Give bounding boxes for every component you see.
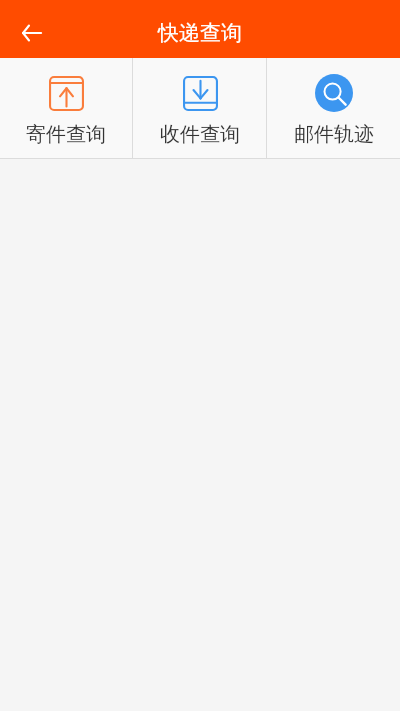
staticText: 快递查询 (158, 20, 242, 46)
button[interactable]: 寄件查询 (0, 58, 132, 158)
button[interactable]: Back (10, 12, 52, 54)
button[interactable]: 邮件轨迹 (267, 58, 400, 158)
button[interactable]: 收件查询 (133, 58, 266, 158)
staticText: 寄件查询 (26, 122, 106, 147)
staticText: 收件查询 (160, 122, 240, 147)
staticText: 邮件轨迹 (294, 122, 374, 147)
